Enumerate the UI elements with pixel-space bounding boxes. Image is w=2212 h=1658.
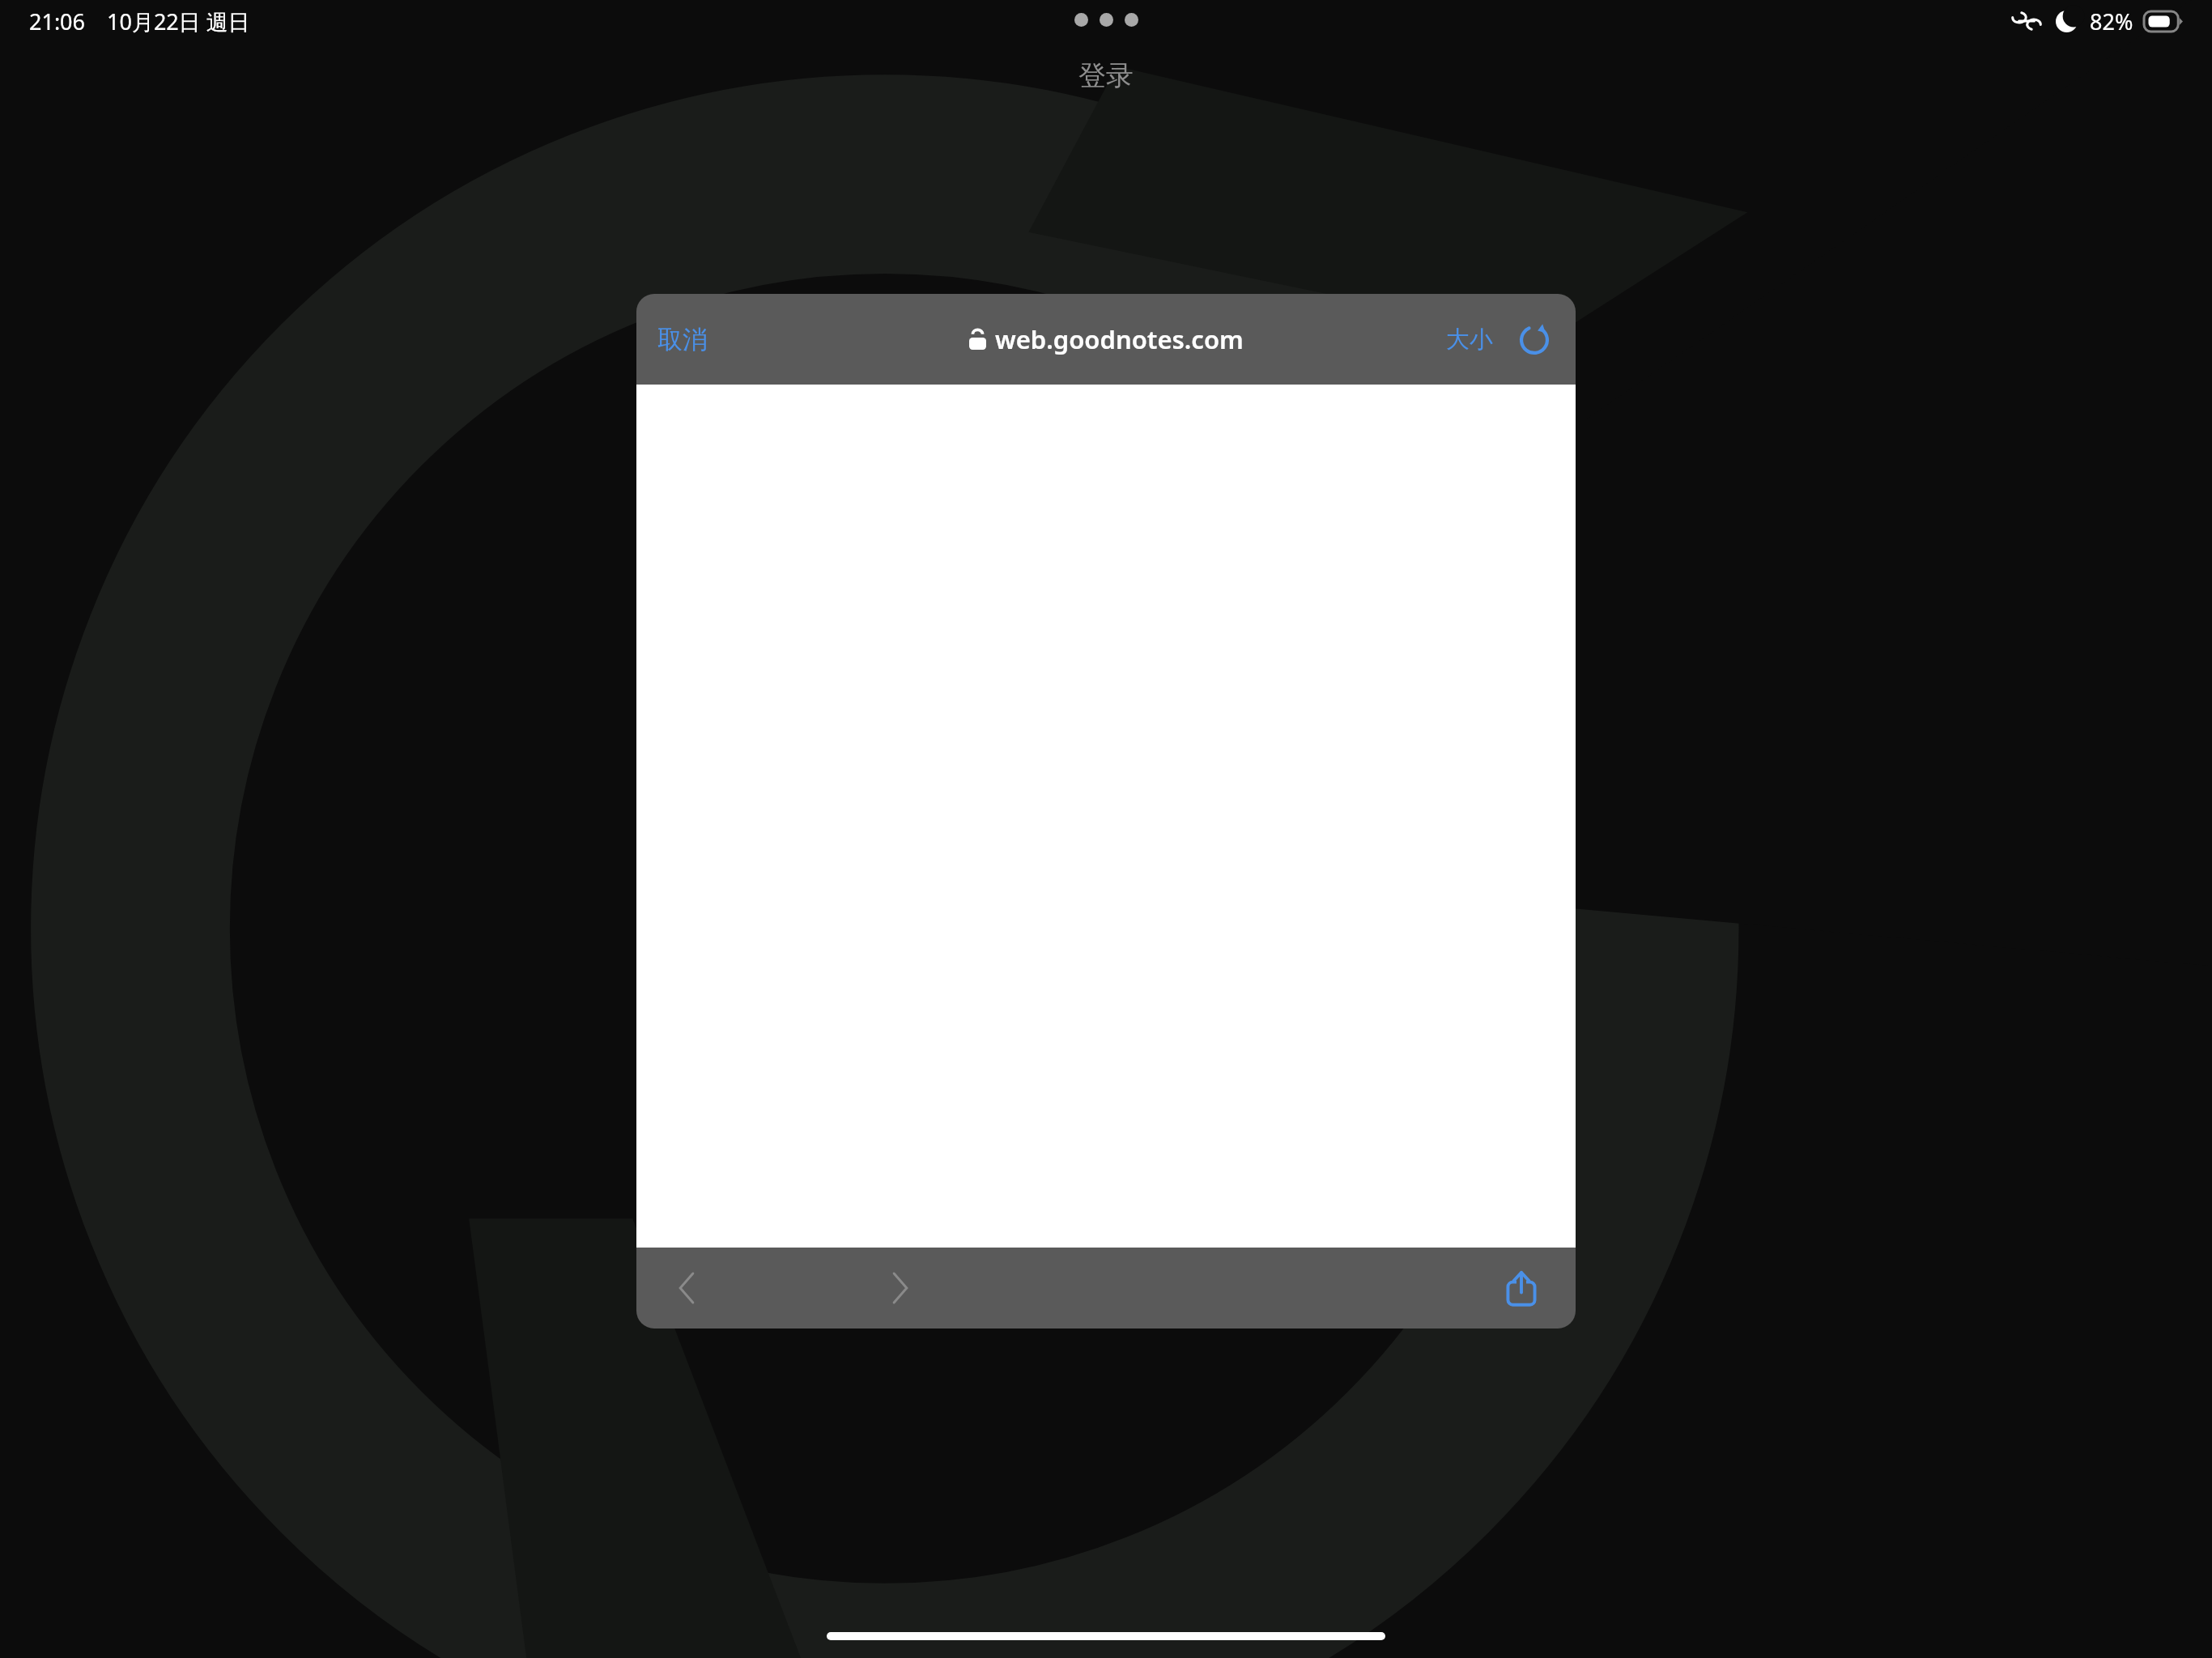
staticText: web.goodnotes.com (995, 322, 1244, 356)
button[interactable]: Back (662, 1258, 711, 1318)
staticText: 登录 (0, 58, 2212, 93)
button[interactable]: 取消 (636, 311, 729, 368)
button[interactable]: 大小 (1436, 312, 1503, 368)
button[interactable]: Share (1496, 1263, 1546, 1313)
staticText: 10月22日 週日 (107, 6, 250, 36)
staticText: 取消 (657, 324, 708, 355)
button[interactable]: Reload (1509, 315, 1559, 365)
staticText: 82% (2090, 6, 2133, 36)
staticText: 21:06 (29, 6, 86, 36)
button[interactable]: Forward (876, 1258, 925, 1318)
staticText: 大小 (1446, 325, 1493, 355)
